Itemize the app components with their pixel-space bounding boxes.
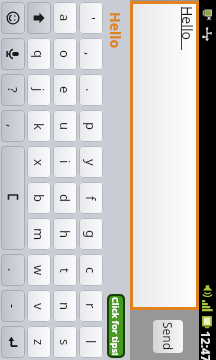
- staticText: y: [82, 159, 100, 166]
- staticText: Send: [160, 322, 176, 351]
- staticText: j: [30, 88, 48, 92]
- staticText: s: [56, 339, 74, 346]
- button[interactable]: a: [53, 2, 77, 34]
- button[interactable]: Enter: [1, 326, 25, 358]
- button[interactable]: .: [79, 74, 103, 106]
- staticText: Hello: [106, 12, 125, 49]
- button[interactable]: .: [1, 254, 25, 286]
- button[interactable]: e: [53, 74, 77, 106]
- staticText: i: [56, 160, 74, 164]
- button[interactable]: Click for tips!: [109, 296, 123, 356]
- staticText: 12:47: [198, 331, 214, 360]
- staticText: q: [30, 50, 48, 58]
- button[interactable]: m: [27, 218, 51, 250]
- staticText: h: [56, 230, 74, 239]
- staticText: r: [82, 303, 100, 309]
- button[interactable]: z: [27, 326, 51, 358]
- staticText: Click for tips!: [110, 297, 122, 356]
- staticText: l: [82, 340, 100, 344]
- staticText: d: [56, 194, 74, 202]
- staticText: ,: [4, 124, 22, 128]
- staticText: x: [30, 159, 48, 166]
- staticText: b: [30, 194, 48, 202]
- button[interactable]: -: [1, 290, 25, 322]
- button[interactable]: q: [27, 38, 51, 70]
- button[interactable]: ': [79, 2, 103, 34]
- button[interactable]: j: [27, 74, 51, 106]
- button[interactable]: f: [79, 182, 103, 214]
- button[interactable]: d: [53, 182, 77, 214]
- staticText: o: [56, 50, 74, 58]
- button[interactable]: b: [27, 182, 51, 214]
- staticText: m: [30, 228, 48, 241]
- button[interactable]: k: [27, 110, 51, 142]
- staticText: e: [56, 86, 74, 94]
- button[interactable]: x: [27, 146, 51, 178]
- staticText: .: [4, 268, 22, 272]
- button[interactable]: Voice input: [1, 38, 25, 70]
- staticText: ': [82, 17, 100, 20]
- button[interactable]: t: [53, 254, 77, 286]
- button[interactable]: g: [79, 218, 103, 250]
- staticText: Hello: [178, 6, 197, 40]
- staticText: .: [82, 88, 100, 92]
- button[interactable]: y: [79, 146, 103, 178]
- staticText: p: [82, 122, 100, 130]
- staticText: ?: [4, 87, 22, 93]
- button[interactable]: u: [53, 110, 77, 142]
- staticText: w: [30, 265, 48, 276]
- button[interactable]: Hello: [133, 4, 196, 307]
- button[interactable]: Emoticons: [1, 2, 25, 34]
- button[interactable]: n: [53, 290, 77, 322]
- button[interactable]: Send: [153, 320, 183, 353]
- staticText: z: [30, 339, 48, 346]
- staticText: n: [56, 302, 74, 311]
- staticText: c: [82, 267, 100, 274]
- button[interactable]: ,: [79, 38, 103, 70]
- button[interactable]: ,: [1, 110, 25, 142]
- button[interactable]: ?: [1, 74, 25, 106]
- button[interactable]: i: [53, 146, 77, 178]
- staticText: u: [56, 122, 74, 131]
- staticText: k: [30, 123, 48, 130]
- staticText: a: [56, 14, 74, 22]
- staticText: g: [82, 230, 100, 238]
- staticText: ,: [82, 52, 100, 56]
- button[interactable]: h: [53, 218, 77, 250]
- button[interactable]: s: [53, 326, 77, 358]
- button[interactable]: v: [27, 290, 51, 322]
- button[interactable]: p: [79, 110, 103, 142]
- button[interactable]: o: [53, 38, 77, 70]
- staticText: v: [30, 303, 48, 310]
- staticText: t: [56, 268, 74, 273]
- button[interactable]: Space: [1, 146, 25, 250]
- staticText: -: [4, 304, 22, 309]
- button[interactable]: r: [79, 290, 103, 322]
- button[interactable]: l: [79, 326, 103, 358]
- button[interactable]: c: [79, 254, 103, 286]
- button[interactable]: w: [27, 254, 51, 286]
- staticText: f: [82, 196, 100, 201]
- button[interactable]: Shift: [27, 2, 51, 34]
